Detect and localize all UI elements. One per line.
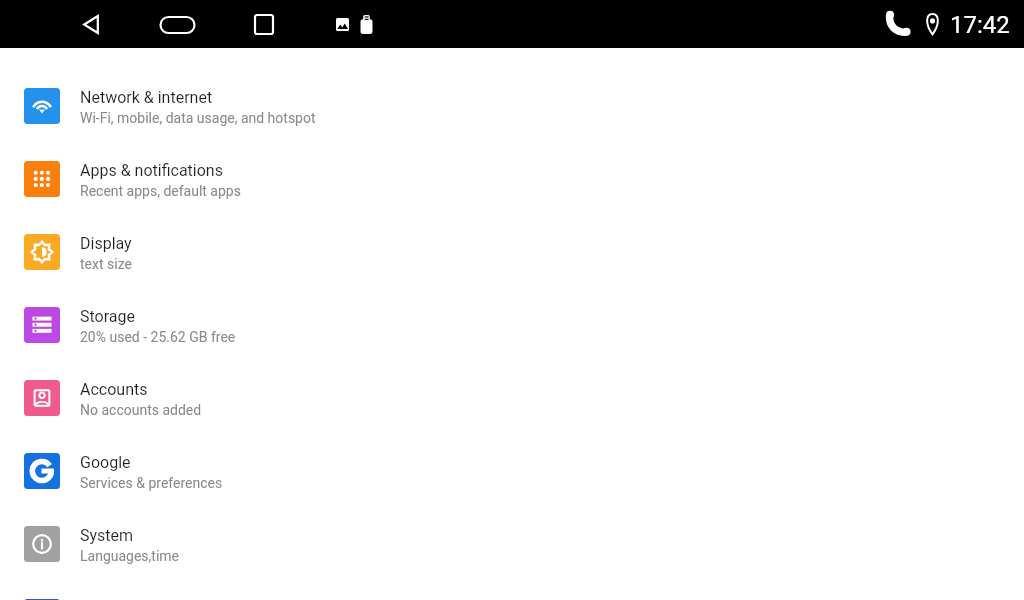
- button[interactable]: Screenshot: [332, 14, 353, 35]
- button[interactable]: About phone: [0, 579, 1024, 600]
- button[interactable]: Home: [152, 11, 202, 37]
- staticText: Apps & notifications: [80, 161, 223, 180]
- staticText: 20% used - 25.62 GB free: [80, 329, 236, 345]
- button[interactable]: Recent apps: [246, 11, 280, 37]
- button[interactable]: Network & internet: [0, 68, 1024, 141]
- staticText: No accounts added: [80, 402, 202, 418]
- staticText: Network & internet: [80, 88, 213, 107]
- staticText: Display: [80, 234, 132, 253]
- staticText: Wi-Fi, mobile, data usage, and hotspot: [80, 110, 316, 126]
- staticText: Recent apps, default apps: [80, 183, 241, 199]
- button[interactable]: Back: [72, 11, 100, 37]
- button[interactable]: Display: [0, 214, 1024, 287]
- button[interactable]: Storage: [0, 287, 1024, 360]
- staticText: Languages,time: [80, 548, 180, 564]
- staticText: Services & preferences: [80, 475, 223, 491]
- staticText: Accounts: [80, 380, 148, 399]
- button[interactable]: USB storage: [356, 13, 377, 36]
- staticText: 17:42: [950, 11, 1010, 39]
- button[interactable]: Apps & notifications: [0, 141, 1024, 214]
- staticText: Storage: [80, 307, 135, 326]
- button[interactable]: System: [0, 506, 1024, 579]
- staticText: Google: [80, 453, 131, 472]
- button[interactable]: Accounts: [0, 360, 1024, 433]
- staticText: System: [80, 526, 134, 545]
- staticText: text size: [80, 256, 132, 272]
- button[interactable]: Google: [0, 433, 1024, 506]
- other: Phone call active: [886, 9, 912, 35]
- other: Location in use: [925, 13, 940, 35]
